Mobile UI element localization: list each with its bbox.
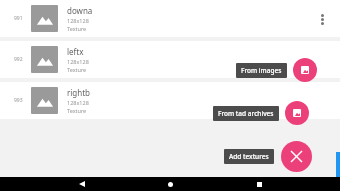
staticText: leftx [67,46,84,57]
staticText: Texture [67,107,87,114]
button[interactable]: Home [163,177,177,191]
button[interactable]: 991 [0,0,340,37]
button[interactable]: Recent apps [252,177,266,191]
staticText: 992 [14,56,23,63]
staticText: 993 [14,97,23,104]
staticText: Add textures [229,152,269,161]
staticText: 991 [14,15,23,22]
staticText: From images [241,66,282,75]
other: Close add textures menu [281,141,312,172]
button[interactable]: 992 [0,41,340,78]
staticText: 128x128 [67,58,89,65]
button[interactable]: Add textures [224,141,312,172]
other: Add texture source [293,58,317,82]
button[interactable]: From images [236,58,317,82]
staticText: 128x128 [67,17,89,24]
button[interactable]: From tad archives [213,101,309,125]
button[interactable]: Back [75,177,89,191]
button[interactable]: More options [309,6,335,32]
button[interactable]: 993 [0,82,340,119]
staticText: downa [67,5,93,16]
staticText: Texture [67,25,87,32]
staticText: Texture [67,66,87,73]
staticText: From tad archives [218,109,274,118]
other: Add texture source [285,101,309,125]
staticText: rightb [67,87,91,98]
staticText: 128x128 [67,99,89,106]
